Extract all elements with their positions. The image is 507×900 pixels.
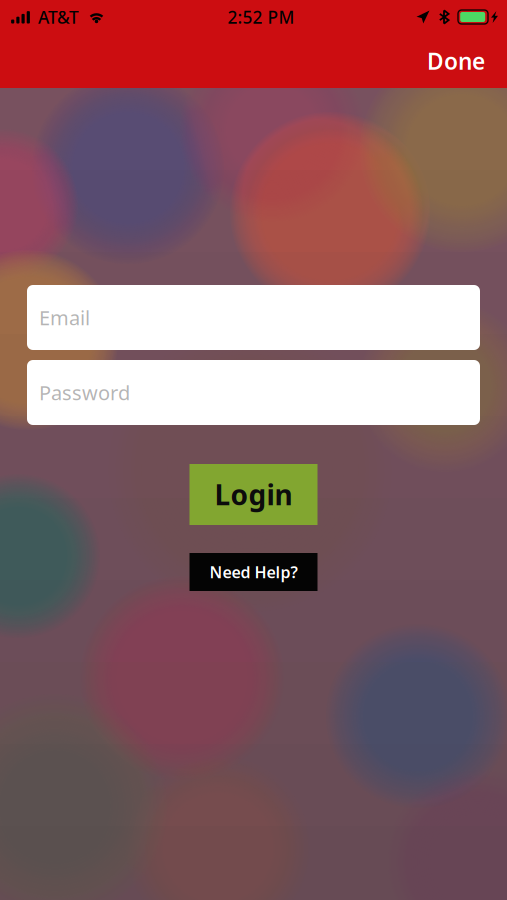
button[interactable]: Need Help?	[189, 553, 317, 591]
staticText: Need Help?	[209, 561, 297, 583]
staticText: 2:52 PM	[227, 5, 294, 28]
staticText: Email	[39, 304, 90, 331]
button[interactable]: Login	[189, 464, 317, 525]
button[interactable]: Done	[413, 38, 499, 84]
staticText: AT&T	[38, 5, 79, 28]
staticText: Done	[427, 46, 485, 76]
staticText: Password	[39, 379, 130, 406]
staticText: Login	[214, 476, 292, 513]
